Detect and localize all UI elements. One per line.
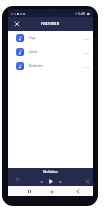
staticText: 5:40 bbox=[78, 11, 86, 16]
staticText: Gentle bbox=[29, 50, 38, 54]
staticText: Meditation bbox=[29, 64, 43, 68]
button[interactable]: Home bbox=[48, 188, 55, 195]
button[interactable]: Next bbox=[57, 179, 63, 185]
button[interactable]: Back bbox=[74, 188, 81, 195]
button[interactable]: Previous bbox=[38, 179, 44, 185]
staticText: 01:50 bbox=[83, 51, 90, 54]
button[interactable]: Repeat bbox=[14, 176, 21, 183]
button[interactable]: Play bbox=[47, 178, 54, 185]
button[interactable]: Recents bbox=[26, 188, 33, 195]
button[interactable]: Meditation bbox=[8, 59, 93, 73]
staticText: Yoga bbox=[29, 36, 36, 40]
staticText: 12:10 bbox=[83, 65, 90, 68]
staticText: FEATURED bbox=[41, 21, 60, 25]
staticText: Meditation bbox=[43, 170, 58, 174]
button[interactable]: Close bbox=[13, 20, 21, 28]
button[interactable]: Yoga bbox=[8, 31, 93, 45]
button[interactable]: Gentle bbox=[8, 45, 93, 59]
button[interactable]: Shuffle bbox=[84, 178, 91, 185]
staticText: 04:20 bbox=[83, 37, 90, 40]
